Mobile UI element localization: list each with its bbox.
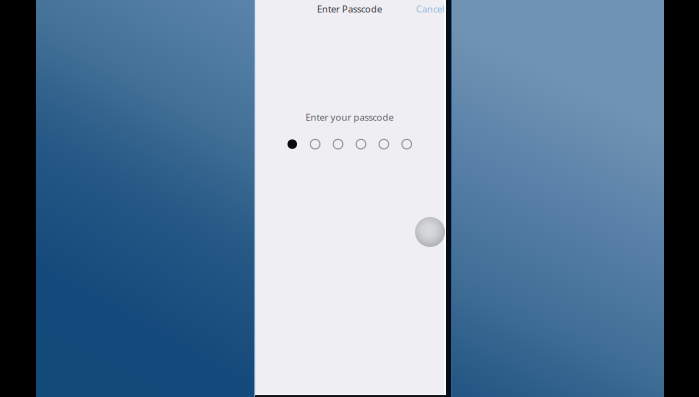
staticText: Cancel: [416, 3, 444, 15]
staticText: Enter Passcode: [317, 3, 382, 15]
button[interactable]: Passcode field, 1 of 6 digits entered: [287, 139, 411, 149]
staticText: Enter your passcode: [305, 111, 393, 123]
button[interactable]: Cancel: [416, 3, 444, 15]
button[interactable]: AssistiveTouch: [415, 217, 445, 247]
